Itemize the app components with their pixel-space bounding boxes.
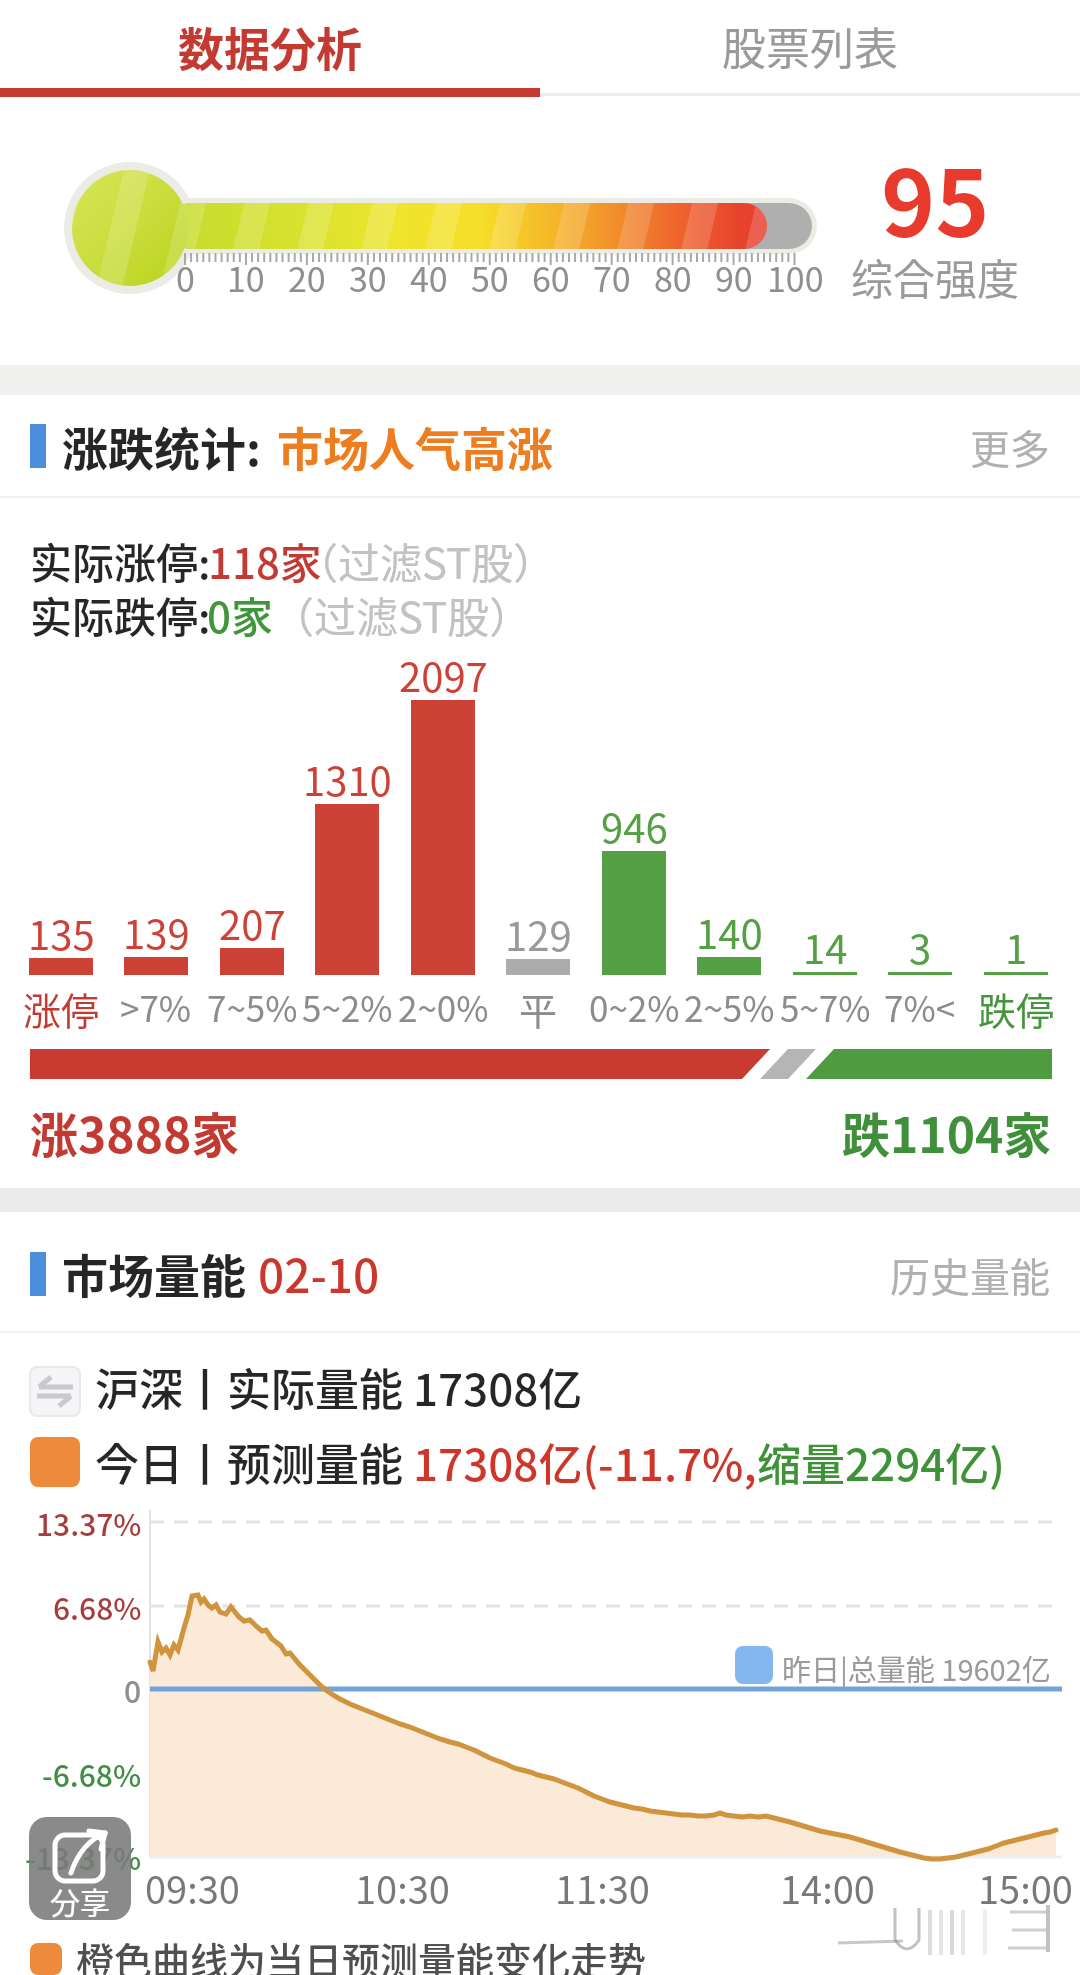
staticText: 10:30 bbox=[355, 1860, 450, 1906]
staticText: 17308亿(-11.7%, bbox=[413, 1430, 757, 1494]
staticText: 跌停 bbox=[978, 981, 1055, 1029]
staticText: 946 bbox=[601, 797, 668, 845]
staticText: 100 bbox=[767, 253, 824, 301]
staticText: 207 bbox=[219, 894, 286, 942]
staticText: （过滤ST股） bbox=[272, 584, 532, 645]
staticText: 分享 bbox=[50, 1879, 110, 1915]
staticText: 0 bbox=[176, 253, 195, 301]
staticText: 10 bbox=[227, 253, 265, 301]
staticText: 140 bbox=[696, 903, 763, 951]
staticText: 平 bbox=[519, 981, 558, 1029]
staticText: 11:30 bbox=[555, 1860, 650, 1906]
staticText: 129 bbox=[505, 905, 572, 953]
staticText: 跌1104家 bbox=[842, 1097, 1052, 1167]
button[interactable]: 历史量能 bbox=[850, 1246, 1050, 1304]
button[interactable]: 分享 bbox=[29, 1817, 131, 1920]
staticText: 历史量能 bbox=[890, 1246, 1050, 1304]
staticText: 今日丨预测量能 bbox=[95, 1430, 413, 1494]
staticText: 70 bbox=[593, 253, 631, 301]
staticText: 80 bbox=[654, 253, 692, 301]
staticText: 7%< bbox=[884, 981, 956, 1029]
staticText: 涨3888家 bbox=[30, 1097, 240, 1167]
staticText: 实际涨停: bbox=[30, 530, 211, 591]
staticText: 1 bbox=[1005, 918, 1028, 966]
staticText: 缩量2294亿) bbox=[757, 1430, 1005, 1494]
staticText: 2097 bbox=[399, 646, 488, 694]
staticText: 昨日|总量能 19602亿 bbox=[782, 1647, 1051, 1685]
staticText: 30 bbox=[349, 253, 387, 301]
staticText: 135 bbox=[28, 904, 95, 952]
staticText: （过滤ST股） bbox=[296, 530, 556, 591]
staticText: 40 bbox=[410, 253, 448, 301]
button[interactable]: 数据分析 bbox=[0, 13, 540, 79]
staticText: 股票列表 bbox=[722, 14, 898, 78]
staticText: -13.37% bbox=[25, 1835, 142, 1878]
staticText: 50 bbox=[471, 253, 509, 301]
staticText: 1310 bbox=[303, 750, 392, 798]
staticText: -6.68% bbox=[42, 1752, 142, 1795]
staticText: 0~2% bbox=[589, 981, 680, 1029]
staticText: 20 bbox=[288, 253, 326, 301]
staticText: 2~5% bbox=[684, 981, 775, 1029]
staticText: 5~2% bbox=[302, 981, 393, 1029]
staticText: 95 bbox=[881, 130, 990, 256]
staticText: 实际跌停: bbox=[30, 584, 211, 645]
staticText: 市场量能 bbox=[62, 1240, 246, 1307]
staticText: 沪深丨实际量能 17308亿 bbox=[95, 1355, 583, 1419]
staticText: 60 bbox=[532, 253, 570, 301]
staticText: 7~5% bbox=[207, 981, 298, 1029]
staticText: 3 bbox=[909, 918, 932, 966]
staticText: 综合强度 bbox=[851, 246, 1020, 300]
staticText: 118家 bbox=[208, 530, 322, 591]
staticText: 14 bbox=[803, 918, 848, 966]
staticText: 15:00 bbox=[978, 1860, 1073, 1906]
staticText: 09:30 bbox=[145, 1860, 240, 1906]
staticText: 13.37% bbox=[36, 1501, 142, 1544]
staticText: 02-10 bbox=[258, 1240, 380, 1307]
staticText: 0家 bbox=[207, 584, 273, 645]
staticText: 139 bbox=[123, 903, 190, 951]
staticText: 14:00 bbox=[780, 1860, 875, 1906]
staticText: 5~7% bbox=[780, 981, 871, 1029]
staticText: 涨停 bbox=[23, 981, 100, 1029]
staticText: 2~0% bbox=[398, 981, 489, 1029]
staticText: 更多 bbox=[970, 418, 1050, 476]
staticText: 市场人气高涨 bbox=[277, 413, 553, 480]
button[interactable]: 股票列表 bbox=[540, 13, 1080, 79]
button[interactable]: 更多 bbox=[900, 418, 1050, 476]
staticText: 数据分析 bbox=[178, 13, 362, 79]
staticText: 橙色曲线为当日预测量能变化走势 bbox=[76, 1931, 647, 1975]
staticText: >7% bbox=[120, 981, 192, 1029]
staticText: 90 bbox=[715, 253, 753, 301]
staticText: 涨跌统计: bbox=[62, 413, 261, 480]
staticText: 6.68% bbox=[53, 1585, 142, 1628]
staticText: 0 bbox=[124, 1668, 142, 1711]
